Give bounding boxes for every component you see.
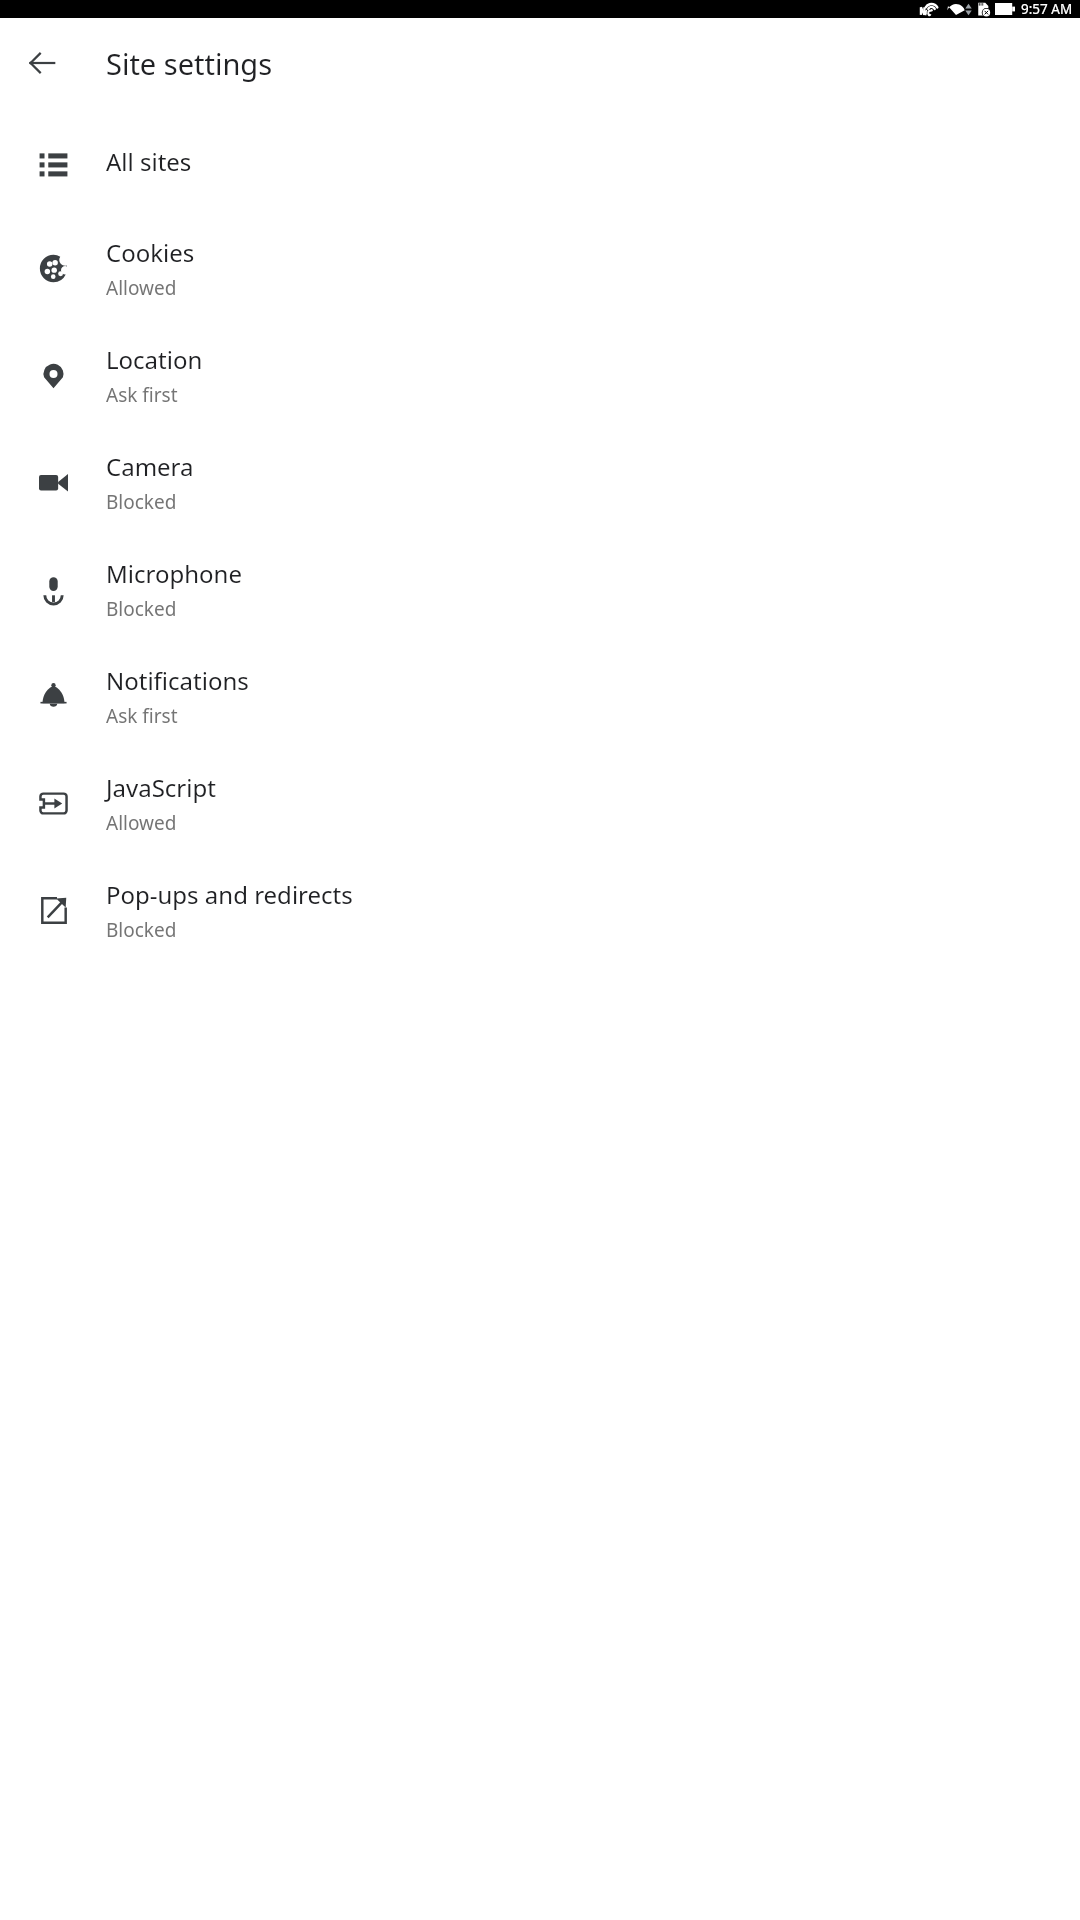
staticText: Ask first [106, 703, 178, 729]
staticText: Allowed [106, 810, 177, 836]
staticText: Cookies [106, 236, 195, 269]
staticText: Location [106, 343, 203, 376]
staticText: JavaScript [106, 771, 216, 804]
staticText: Allowed [106, 275, 177, 301]
staticText: Ask first [106, 382, 178, 408]
button[interactable]: Cookies [0, 215, 1080, 322]
button[interactable]: Location [0, 322, 1080, 429]
staticText: Pop-ups and redirects [106, 878, 353, 911]
button[interactable]: Microphone [0, 536, 1080, 643]
staticText: Notifications [106, 664, 249, 697]
staticText: 9:57 AM [1021, 0, 1073, 18]
staticText: Blocked [106, 489, 177, 515]
staticText: Camera [106, 450, 194, 483]
staticText: Blocked [106, 917, 177, 943]
button[interactable]: All sites [0, 108, 1080, 215]
staticText: Blocked [106, 596, 177, 622]
staticText: All sites [106, 145, 192, 178]
staticText: Site settings [106, 44, 273, 83]
button[interactable]: Pop-ups and redirects [0, 857, 1080, 964]
button[interactable]: Notifications [0, 643, 1080, 750]
button[interactable]: Back [14, 35, 70, 91]
staticText: Microphone [106, 557, 242, 590]
button[interactable]: JavaScript [0, 750, 1080, 857]
button[interactable]: Camera [0, 429, 1080, 536]
